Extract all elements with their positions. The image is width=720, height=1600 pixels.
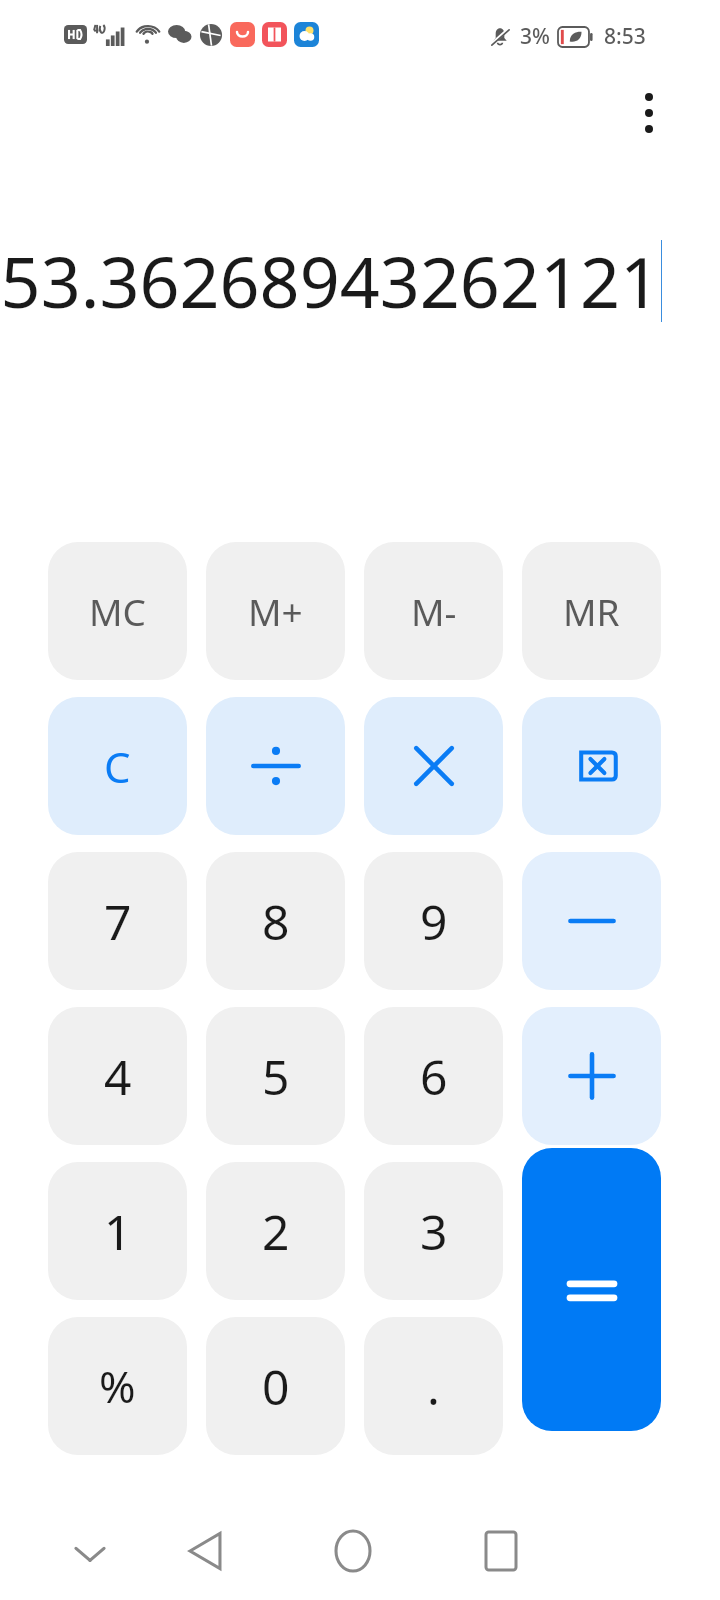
staticText: 53.36268943262121	[0, 233, 660, 328]
staticText: 8	[262, 889, 290, 954]
staticText: 0	[262, 1354, 290, 1419]
staticText: M-	[411, 586, 457, 636]
button[interactable]: 6	[364, 1007, 503, 1145]
button[interactable]: .	[364, 1317, 503, 1455]
button[interactable]: Divide	[206, 697, 345, 835]
button[interactable]: 0	[206, 1317, 345, 1455]
button[interactable]: M+	[206, 542, 345, 680]
staticText: 5	[262, 1044, 290, 1109]
staticText: MC	[89, 586, 146, 636]
button[interactable]: 9	[364, 852, 503, 990]
button[interactable]: 2	[206, 1162, 345, 1300]
staticText: 3%	[520, 22, 550, 51]
button[interactable]: 1	[48, 1162, 187, 1300]
button[interactable]: Hide keyboard	[50, 1524, 130, 1584]
staticText: 1	[104, 1199, 132, 1264]
button[interactable]: M-	[364, 542, 503, 680]
button[interactable]: MC	[48, 542, 187, 680]
button[interactable]: 5	[206, 1007, 345, 1145]
staticText: .	[427, 1354, 440, 1419]
staticText: 3	[420, 1199, 448, 1264]
button[interactable]: MR	[522, 542, 661, 680]
button[interactable]: Back	[165, 1516, 245, 1586]
button[interactable]: Recents	[461, 1516, 541, 1586]
button[interactable]: 7	[48, 852, 187, 990]
button[interactable]: Minus	[522, 852, 661, 990]
button[interactable]: More options	[618, 82, 680, 144]
staticText: M+	[248, 586, 303, 636]
staticText: %	[99, 1356, 136, 1416]
staticText: 4	[104, 1044, 132, 1109]
button[interactable]: Backspace	[522, 697, 661, 835]
staticText: 2	[262, 1199, 290, 1264]
button[interactable]: 3	[364, 1162, 503, 1300]
button[interactable]: Equals	[522, 1148, 661, 1431]
button[interactable]: 4	[48, 1007, 187, 1145]
button[interactable]: Home	[313, 1516, 393, 1586]
button[interactable]: Multiply	[364, 697, 503, 835]
button[interactable]: Plus	[522, 1007, 661, 1145]
button[interactable]: 8	[206, 852, 345, 990]
staticText: MR	[563, 586, 620, 636]
staticText: 8:53	[604, 22, 646, 51]
staticText: 9	[420, 889, 448, 954]
button[interactable]: %	[48, 1317, 187, 1455]
staticText: 7	[104, 889, 132, 954]
staticText: 6	[420, 1044, 448, 1109]
button[interactable]: C	[48, 697, 187, 835]
staticText: C	[104, 738, 131, 795]
